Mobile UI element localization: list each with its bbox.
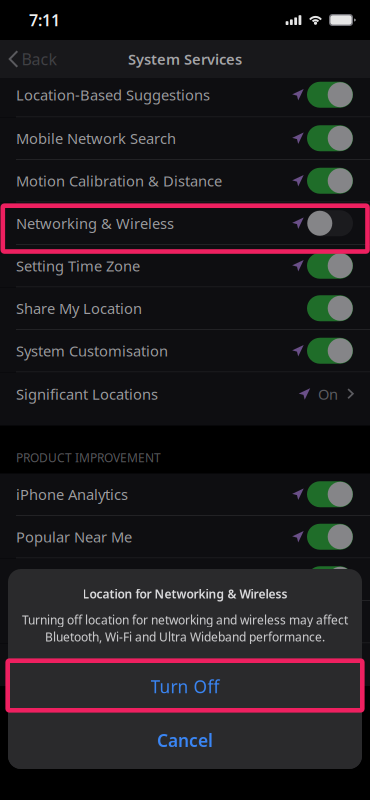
button[interactable]: Location-Based Suggestions (0, 78, 370, 117)
staticText: System Customisation (16, 341, 168, 360)
button[interactable]: Networking & Wireless (0, 202, 370, 245)
staticText: 7:11 (29, 9, 60, 31)
staticText: Turn Off (150, 675, 219, 698)
staticText: Back (21, 48, 57, 70)
staticText: Motion Calibration & Distance (16, 171, 222, 190)
staticText: Popular Near Me (16, 527, 132, 546)
button[interactable]: Cancel (8, 712, 362, 769)
button[interactable]: Routing & Traffic (0, 558, 370, 601)
button[interactable]: System Customisation (0, 330, 370, 372)
button[interactable]: Setting Time Zone (0, 245, 370, 287)
button[interactable]: Share My Location (0, 287, 370, 330)
button[interactable]: Back (0, 40, 65, 78)
button[interactable]: Significant Locations (0, 372, 370, 425)
staticText: Significant Locations (16, 384, 158, 404)
staticText: Location-Based Suggestions (16, 85, 210, 104)
staticText: System Services (128, 49, 242, 69)
button[interactable]: iPhone Analytics (0, 473, 370, 516)
staticText: PRODUCT IMPROVEMENT (16, 450, 161, 465)
button[interactable]: Popular Near Me (0, 516, 370, 558)
staticText: Turning off location for networking and … (22, 612, 348, 628)
staticText: On (318, 384, 338, 404)
staticText: Share My Location (16, 298, 142, 318)
staticText: iPhone Analytics (16, 484, 128, 504)
staticText: Show the Location Services icon in the s… (16, 693, 340, 709)
staticText: Location for Networking & Wireless (82, 586, 287, 602)
button[interactable]: Mobile Network Search (0, 117, 370, 160)
button[interactable]: Status Bar Icon (0, 643, 370, 686)
button[interactable]: Motion Calibration & Distance (0, 160, 370, 202)
button[interactable]: Improve Maps (0, 601, 370, 643)
staticText: Mobile Network Search (16, 128, 176, 148)
staticText: Status Bar Icon (16, 654, 120, 674)
staticText: Bluetooth, Wi-Fi and Ultra Wideband perf… (45, 629, 325, 645)
staticText: Cancel (157, 729, 213, 752)
staticText: Setting Time Zone (16, 256, 140, 275)
button[interactable]: Turn Off (8, 662, 362, 711)
staticText: Networking & Wireless (16, 213, 174, 233)
staticText: Improve Maps (16, 612, 115, 631)
